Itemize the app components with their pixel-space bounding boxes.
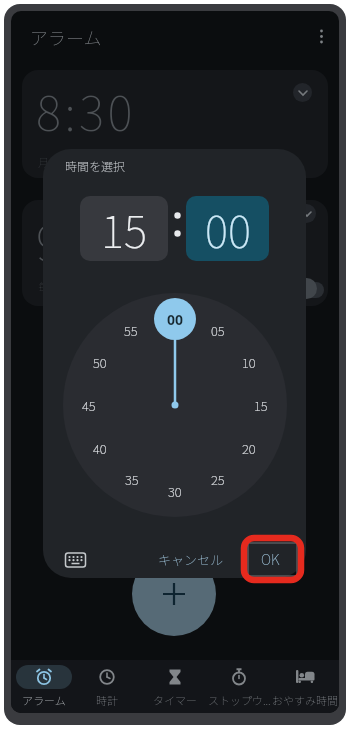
staticText: アラーム (22, 692, 66, 708)
button[interactable] (163, 665, 187, 689)
button[interactable]: 15 (80, 196, 168, 261)
staticText: 20 (242, 439, 256, 458)
staticText: 15 (101, 197, 147, 261)
staticText: 50 (93, 353, 107, 372)
staticText: 9:00 (36, 205, 137, 275)
staticText: 毎日 (38, 278, 60, 294)
staticText: 00 (205, 197, 251, 261)
button[interactable] (65, 552, 86, 568)
button[interactable]: 9:00 (22, 200, 328, 306)
staticText: ストップウ... (208, 692, 271, 708)
button[interactable]: 00 (186, 196, 269, 261)
staticText: タイマー (153, 692, 197, 708)
staticText: 25 (211, 470, 225, 489)
staticText: 時計 (96, 692, 118, 708)
button[interactable] (293, 83, 312, 102)
button[interactable] (132, 552, 216, 636)
button[interactable]: 8:30 (22, 70, 328, 178)
button[interactable] (311, 26, 333, 48)
staticText: 55 (124, 321, 138, 340)
staticText: 15 (254, 396, 268, 415)
button[interactable]: 00 (154, 298, 196, 340)
button[interactable] (16, 665, 72, 689)
staticText: おやすみ時間 (272, 692, 338, 708)
staticText: アラーム (30, 24, 102, 50)
staticText: OK (261, 549, 280, 569)
staticText: 05 (211, 321, 225, 340)
staticText: 時間を選択 (65, 157, 126, 174)
button[interactable] (293, 665, 317, 689)
staticText: 月、火、水、木、金 (38, 154, 137, 170)
staticText: 8:30 (36, 75, 137, 145)
staticText: 10 (242, 353, 256, 372)
button[interactable] (95, 665, 119, 689)
staticText: キャンセル (158, 550, 224, 569)
button[interactable]: OK (247, 546, 293, 572)
staticText: 40 (93, 439, 107, 458)
button[interactable]: キャンセル (153, 546, 229, 572)
button[interactable] (227, 665, 251, 689)
staticText: 00 (167, 310, 184, 329)
staticText: 45 (82, 396, 96, 415)
staticText: 35 (125, 470, 139, 489)
staticText: 30 (168, 482, 182, 501)
